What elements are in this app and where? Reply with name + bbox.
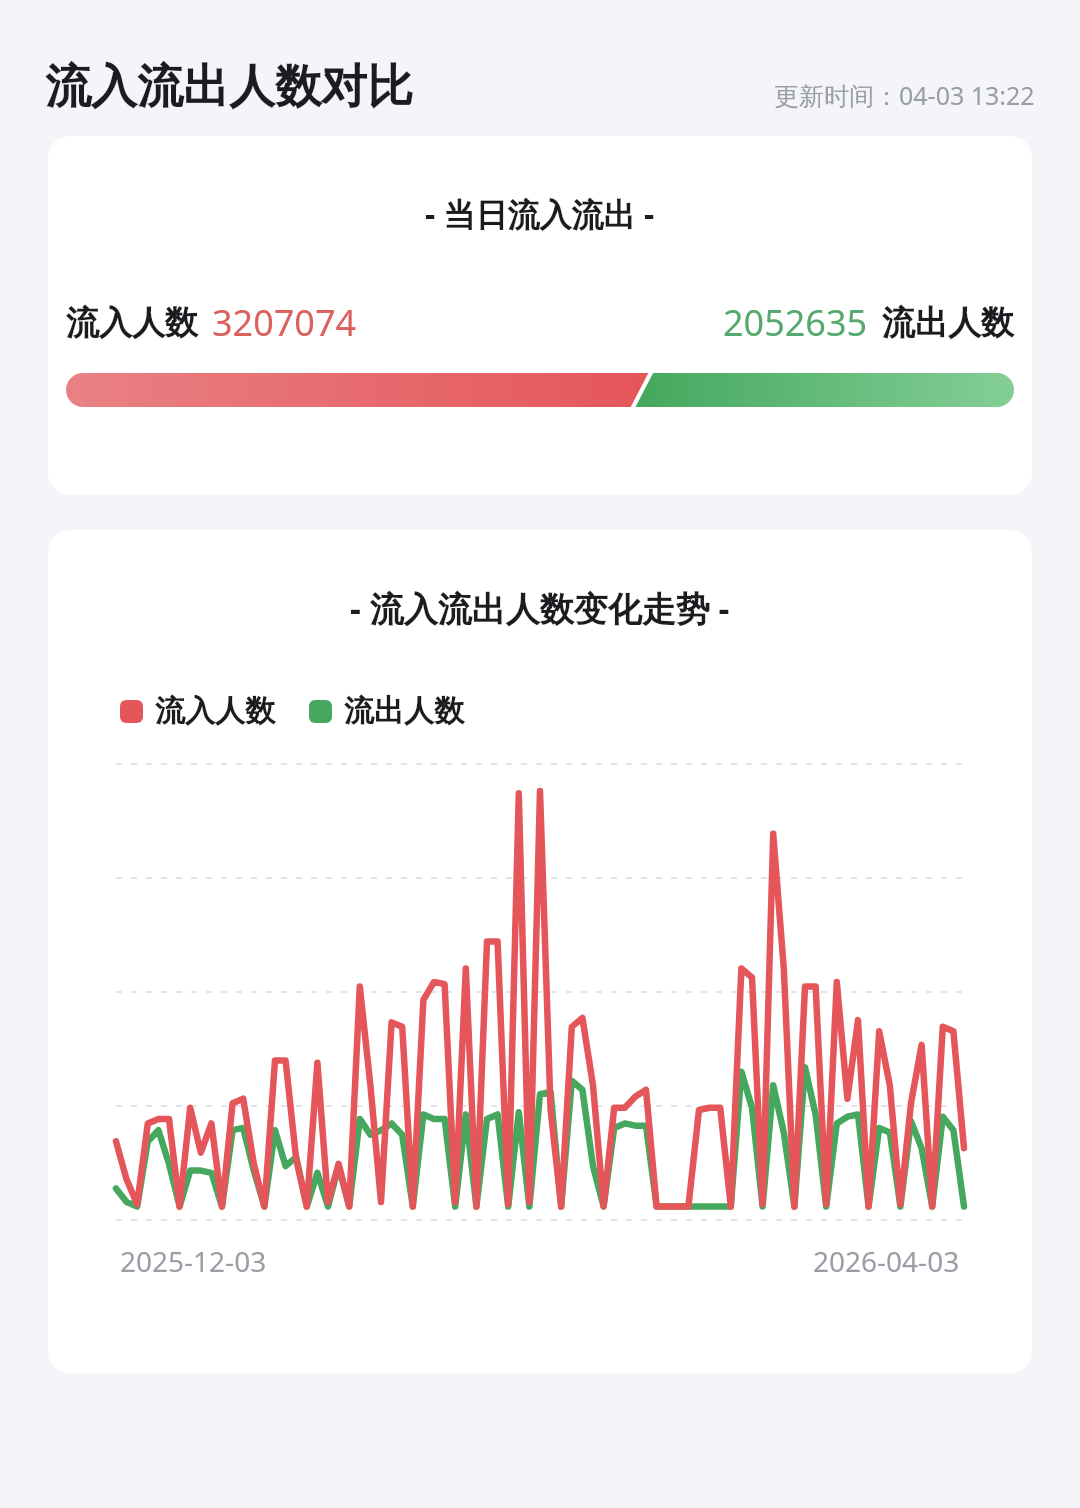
staticText: 2026-04-03 (813, 1242, 960, 1280)
staticText: 2025-12-03 (120, 1242, 267, 1280)
button[interactable]: - 流入流出人数变化走势 - (48, 530, 1032, 1373)
button[interactable]: 流入流出占比 (66, 373, 1014, 407)
staticText: - 当日流入流出 - (425, 192, 655, 236)
button[interactable]: 流入流出人数变化走势图 (116, 764, 964, 1220)
button[interactable]: - 当日流入流出 - (48, 136, 1032, 495)
staticText: - 流入流出人数变化走势 - (350, 585, 730, 631)
staticText: 流入人数 (155, 692, 275, 730)
staticText: 流入人数 (66, 302, 198, 344)
staticText: 流入流出人数对比 (45, 58, 413, 116)
staticText: 流出人数 (344, 692, 464, 730)
staticText: 3207074 (212, 298, 357, 347)
staticText: 更新时间：04-03 13:22 (774, 78, 1035, 112)
staticText: 流出人数 (882, 302, 1014, 344)
staticText: 2052635 (723, 298, 868, 347)
